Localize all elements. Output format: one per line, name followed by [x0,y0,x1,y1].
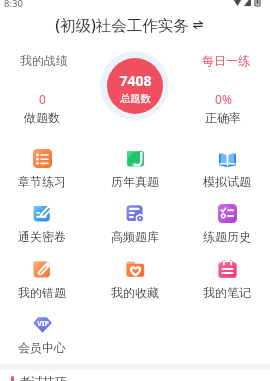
button[interactable]: 每日一练 [202,53,250,68]
staticText: 总题数 [120,92,151,105]
staticText: 正确率 [205,110,241,125]
button[interactable]: Switch subject [192,19,204,31]
staticText: 高频题库 [111,229,159,244]
staticText: 我的错题 [18,285,66,300]
staticText: 章节练习 [18,174,66,189]
button[interactable]: 练题历史 [193,202,261,244]
staticText: 做题数 [24,110,60,125]
staticText: 模拟试题 [203,174,251,189]
button[interactable]: VIP [8,313,76,355]
staticText: 7408 [119,71,152,90]
staticText: (初级)社会工作实务 [55,14,189,35]
button[interactable]: 章节练习 [8,147,76,189]
staticText: 我的战绩 [20,53,68,68]
staticText: 练题历史 [203,229,251,244]
button[interactable]: 高频题库 [101,202,169,244]
button[interactable]: 我的收藏 [101,258,169,300]
staticText: 考试技巧 [19,374,67,381]
staticText: 0 [39,91,46,107]
staticText: 8:30 [4,0,23,9]
staticText: 会员中心 [18,340,66,355]
button[interactable]: 通关密卷 [8,202,76,244]
staticText: 历年真题 [111,174,159,189]
staticText: VIP [37,319,49,329]
staticText: 0% [215,91,232,107]
button[interactable]: 我的错题 [8,258,76,300]
staticText: 我的笔记 [203,285,251,300]
staticText: 通关密卷 [18,229,66,244]
button[interactable]: 我的笔记 [193,258,261,300]
button[interactable]: 模拟试题 [193,147,261,189]
staticText: 我的收藏 [111,285,159,300]
button[interactable]: 历年真题 [101,147,169,189]
